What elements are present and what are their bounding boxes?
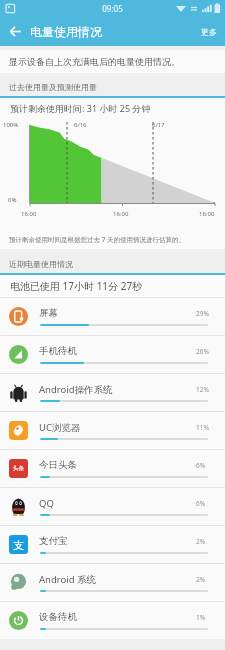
staticText: 2% [196,537,206,546]
button[interactable]: 手机待机 [0,336,225,373]
staticText: Android 系统 [39,573,97,586]
staticText: Android操作系统 [39,383,113,396]
staticText: 6/17 [152,121,165,129]
staticText: 显示设备自上次充满电后的电量使用情况。 [9,56,180,67]
staticText: UC浏览器 [39,421,81,434]
staticText: 29% [196,309,209,318]
staticText: 0% [8,196,17,204]
button[interactable]: QQ [0,488,225,525]
staticText: 1% [196,613,206,622]
button[interactable]: 设备待机 [0,602,225,639]
staticText: 16:00 [21,210,37,218]
staticText: 6/16 [74,121,87,129]
button[interactable]: Android操作系统 [0,374,225,411]
staticText: 6% [196,461,206,470]
staticText: 今日头条 [39,459,77,471]
staticText: 近期电量使用情况 [9,259,73,269]
staticText: 16:00 [113,210,129,218]
staticText: 手机待机 [39,345,77,357]
button[interactable]: 屏幕 [0,298,225,335]
staticText: 头条 [13,465,24,472]
staticText: QQ [39,497,54,510]
button[interactable]: Android 系统 [0,564,225,601]
staticText: 屏幕 [39,307,58,319]
button[interactable]: Back [0,17,30,46]
staticText: 支 [13,538,24,552]
staticText: 11% [196,423,209,432]
staticText: 16:00 [199,210,215,218]
button[interactable]: 头条 [0,450,225,487]
staticText: 2% [196,575,206,584]
button[interactable]: 更多 [193,17,225,46]
staticText: 过去使用量及预测使用量 [9,82,97,92]
staticText: 100% [3,121,19,129]
staticText: 支付宝 [39,535,68,547]
staticText: 预计剩余使用时间是根据您过去 7 天的使用情况进行估算的。 [9,235,186,244]
staticText: 09:05 [102,3,123,14]
staticText: 6% [196,499,206,508]
staticText: 12% [196,385,209,394]
staticText: 电池已使用 17小时 11分 27秒 [10,279,143,293]
button[interactable]: 支 [0,526,225,563]
staticText: 26% [196,347,209,356]
staticText: 预计剩余使用时间: 31 小时 25 分钟 [10,102,151,114]
staticText: 电量使用情况 [30,24,193,39]
staticText: 设备待机 [39,611,77,623]
button[interactable]: UC浏览器 [0,412,225,449]
staticText: 更多 [201,27,217,37]
